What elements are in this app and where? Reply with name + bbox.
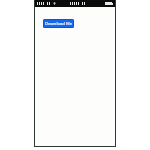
button[interactable]: Download file: [43, 19, 74, 28]
staticText: Download file: [45, 21, 72, 27]
